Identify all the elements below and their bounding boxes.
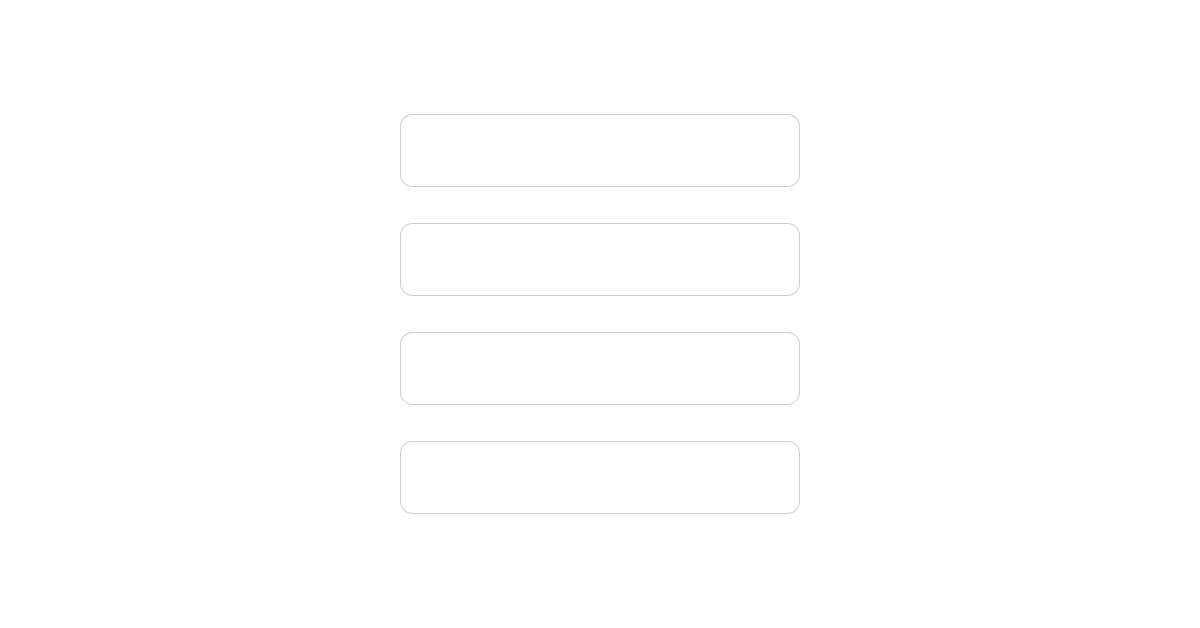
button[interactable]: Option 4 xyxy=(400,441,799,513)
button[interactable]: Option 1 xyxy=(400,114,799,186)
button[interactable]: Option 3 xyxy=(400,332,799,404)
button[interactable]: Option 2 xyxy=(400,223,799,295)
